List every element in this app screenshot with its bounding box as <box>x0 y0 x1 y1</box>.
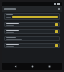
button[interactable]: Home <box>28 63 36 70</box>
button[interactable]: Recents <box>45 63 53 70</box>
button[interactable]: Toggle Bluetooth <box>4 29 60 34</box>
other: Toggle Sync <box>55 44 58 47</box>
button[interactable]: More options <box>2 6 62 12</box>
button[interactable] <box>4 36 60 41</box>
other: Toggle Wi-Fi <box>55 23 58 26</box>
button[interactable]: Back <box>11 63 19 70</box>
button[interactable]: Toggle Wi-Fi <box>4 22 60 27</box>
other: Toggle Bluetooth <box>55 30 58 33</box>
button[interactable] <box>4 13 60 20</box>
button[interactable]: Toggle Sync <box>4 43 60 48</box>
